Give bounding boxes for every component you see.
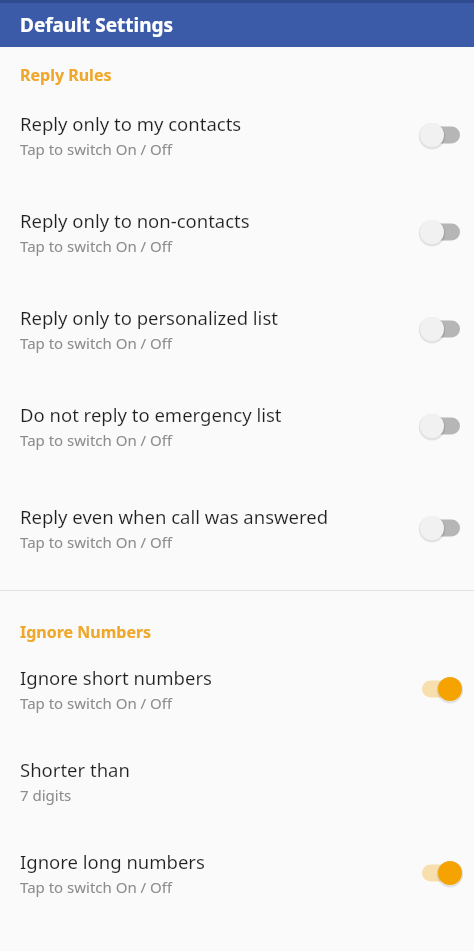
staticText: Tap to switch On / Off — [20, 693, 173, 713]
staticText: Tap to switch On / Off — [20, 139, 173, 159]
staticText: Ignore Numbers — [20, 621, 152, 643]
staticText: Reply even when call was answered — [20, 504, 329, 529]
staticText: Tap to switch On / Off — [20, 877, 173, 897]
staticText: Ignore long numbers — [20, 849, 205, 874]
staticText: Tap to switch On / Off — [20, 430, 173, 450]
button[interactable]: Toggle on — [410, 853, 466, 893]
staticText: Tap to switch On / Off — [20, 532, 173, 552]
staticText: Reply only to non-contacts — [20, 208, 250, 233]
button[interactable]: Toggle off — [410, 309, 466, 349]
button[interactable]: Toggle off — [410, 212, 466, 252]
button[interactable]: Reply only to personalized list — [0, 280, 474, 377]
staticText: 7 digits — [20, 785, 72, 805]
staticText: Ignore short numbers — [20, 665, 212, 690]
button[interactable]: Ignore long numbers — [0, 827, 474, 919]
button[interactable]: Ignore short numbers — [0, 643, 474, 735]
button[interactable]: Do not reply to emergency list — [0, 377, 474, 474]
button[interactable]: Toggle off — [410, 508, 466, 548]
staticText: Tap to switch On / Off — [20, 236, 173, 256]
staticText: Default Settings — [20, 12, 174, 38]
button[interactable]: Reply even when call was answered — [0, 474, 474, 582]
button[interactable]: Toggle off — [410, 115, 466, 155]
staticText: Reply Rules — [20, 64, 112, 86]
staticText: Tap to switch On / Off — [20, 333, 173, 353]
button[interactable]: Toggle on — [410, 669, 466, 709]
button[interactable]: Reply only to non-contacts — [0, 183, 474, 280]
button[interactable]: Shorter than — [0, 735, 474, 827]
staticText: Reply only to my contacts — [20, 111, 242, 136]
button[interactable]: Toggle off — [410, 406, 466, 446]
button[interactable]: Reply only to my contacts — [0, 86, 474, 183]
staticText: Reply only to personalized list — [20, 305, 278, 330]
staticText: Shorter than — [20, 757, 130, 782]
staticText: Do not reply to emergency list — [20, 402, 282, 427]
